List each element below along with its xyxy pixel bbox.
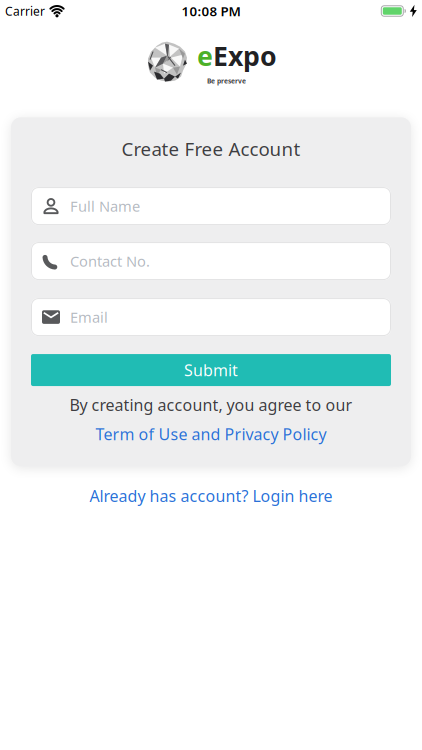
staticText: Term of Use and Privacy Policy: [95, 423, 326, 444]
staticText: Contact No.: [70, 251, 150, 271]
staticText: Carrier: [5, 3, 45, 19]
button[interactable]: Term of Use and Privacy Policy: [95, 423, 326, 444]
staticText: e: [197, 38, 213, 73]
staticText: Be preserve: [207, 76, 246, 85]
button[interactable]: Submit: [31, 354, 391, 386]
button[interactable]: Email: [31, 298, 391, 336]
staticText: By creating account, you agree to our: [69, 394, 352, 415]
staticText: 10:08 PM: [181, 2, 240, 20]
button[interactable]: Full Name: [31, 187, 391, 225]
staticText: Full Name: [70, 196, 140, 216]
staticText: Email: [70, 307, 108, 327]
staticText: Submit: [184, 359, 238, 381]
staticText: Create Free Account: [121, 136, 300, 161]
button[interactable]: Contact No.: [31, 242, 391, 280]
staticText: Already has account? Login here: [89, 485, 332, 506]
button[interactable]: Already has account? Login here: [89, 485, 332, 506]
staticText: Expo: [213, 38, 277, 73]
